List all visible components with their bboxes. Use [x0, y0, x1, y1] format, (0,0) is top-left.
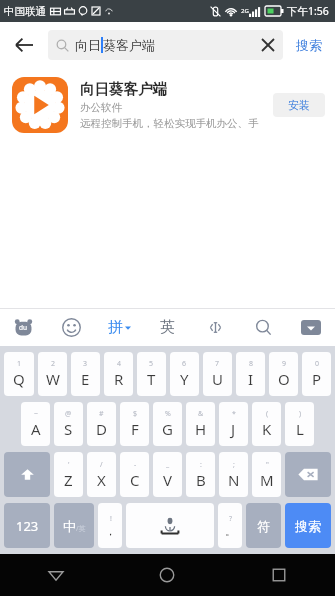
staticText: 2	[51, 359, 56, 369]
button[interactable]: Clear	[253, 30, 283, 60]
button[interactable]: 向日葵客户端	[0, 68, 335, 142]
button[interactable]: "	[252, 452, 281, 497]
staticText: -	[134, 460, 137, 470]
button[interactable]: 安装	[273, 93, 325, 117]
button[interactable]: Space	[126, 503, 214, 548]
staticText: S	[64, 419, 73, 439]
staticText: 搜索	[295, 518, 321, 534]
staticText: 下午1:56	[287, 4, 329, 18]
button[interactable]: 拼	[95, 309, 143, 346]
staticText: P	[312, 369, 322, 389]
staticText: B	[196, 470, 206, 490]
staticText: 6	[182, 359, 187, 369]
button[interactable]: /	[87, 452, 116, 497]
staticText: H	[195, 419, 207, 439]
staticText: $	[133, 409, 138, 419]
staticText: C	[130, 470, 140, 490]
button[interactable]: %	[153, 402, 182, 446]
button[interactable]: &	[186, 402, 215, 446]
staticText: ;	[233, 460, 235, 470]
button[interactable]: -	[120, 452, 149, 497]
staticText: 办公软件	[80, 101, 122, 114]
button[interactable]: #	[87, 402, 116, 446]
button[interactable]: :	[186, 452, 215, 497]
staticText: M	[260, 470, 274, 490]
button[interactable]: ~	[21, 402, 50, 446]
staticText: 4	[117, 359, 122, 369]
button[interactable]: ?	[218, 503, 242, 548]
staticText: )	[299, 409, 302, 419]
button[interactable]: Emoji	[47, 309, 95, 346]
staticText: 安装	[288, 98, 310, 112]
staticText: :	[200, 460, 202, 470]
staticText: 9	[282, 359, 287, 369]
button[interactable]: (	[252, 402, 281, 446]
staticText: *	[232, 409, 236, 419]
staticText: 123	[16, 517, 39, 535]
staticText: N	[228, 470, 240, 490]
button[interactable]: '	[54, 452, 83, 497]
button[interactable]: $	[120, 402, 149, 446]
button[interactable]: 1	[4, 352, 34, 396]
staticText: 1	[17, 359, 22, 369]
staticText: 3	[83, 359, 88, 369]
button[interactable]: 搜索	[283, 22, 335, 68]
button[interactable]: Hide keyboard	[287, 309, 335, 346]
staticText: 拼	[108, 318, 123, 337]
staticText: 8	[249, 359, 254, 369]
staticText: 2G	[241, 7, 249, 15]
button[interactable]: 0	[302, 352, 331, 396]
staticText: du	[19, 323, 28, 332]
staticText: #	[99, 409, 104, 419]
button[interactable]: 符	[246, 503, 281, 548]
button[interactable]: Move cursor	[191, 309, 239, 346]
button[interactable]: )	[285, 402, 314, 446]
button[interactable]: 搜索	[285, 503, 331, 548]
button[interactable]: _	[153, 452, 182, 497]
button[interactable]: Baidu input	[0, 309, 47, 346]
staticText: W	[46, 369, 60, 389]
button[interactable]: Recents	[223, 554, 335, 596]
button[interactable]: 123	[4, 503, 50, 548]
staticText: 葵客户端	[103, 37, 155, 53]
staticText: !	[110, 514, 112, 524]
staticText: 远程控制手机，轻松实现手机办公、手机…	[80, 117, 265, 130]
button[interactable]: Back	[0, 22, 48, 68]
button[interactable]: ;	[219, 452, 248, 497]
staticText: U	[212, 369, 223, 389]
button[interactable]: Shift	[4, 452, 50, 497]
staticText: _	[166, 460, 170, 470]
staticText: V	[163, 470, 173, 490]
staticText: 英	[160, 318, 175, 337]
staticText: /英	[76, 524, 86, 534]
button[interactable]: *	[219, 402, 248, 446]
button[interactable]: Backspace	[285, 452, 331, 497]
staticText: G	[162, 419, 173, 439]
button[interactable]: 7	[203, 352, 232, 396]
button[interactable]: 英	[143, 309, 191, 346]
staticText: ?	[229, 514, 233, 524]
button[interactable]: 4	[104, 352, 133, 396]
staticText: L	[296, 419, 304, 439]
staticText: K	[262, 419, 272, 439]
button[interactable]: 8	[236, 352, 265, 396]
button[interactable]: Search	[239, 309, 287, 346]
button[interactable]: 9	[269, 352, 298, 396]
button[interactable]: 3	[71, 352, 100, 396]
button[interactable]: 5	[137, 352, 166, 396]
button[interactable]: @	[54, 402, 83, 446]
button[interactable]: 6	[170, 352, 199, 396]
staticText: O	[278, 369, 290, 389]
button[interactable]: Home	[111, 554, 223, 596]
button[interactable]: 向日	[48, 30, 283, 60]
staticText: D	[96, 419, 107, 439]
staticText: 搜索	[296, 37, 322, 53]
staticText: Y	[180, 369, 189, 389]
button[interactable]: !	[98, 503, 122, 548]
button[interactable]: 中	[54, 503, 94, 548]
staticText: 5	[149, 359, 154, 369]
button[interactable]: 2	[38, 352, 67, 396]
button[interactable]: Back	[0, 554, 111, 596]
staticText: 7	[215, 359, 220, 369]
staticText: (	[266, 409, 269, 419]
